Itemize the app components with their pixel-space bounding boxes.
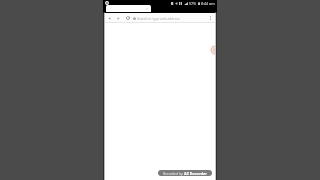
- button[interactable]: Search or type web address: [137, 13, 206, 23]
- button[interactable]: Back: [105, 13, 114, 23]
- staticText: AZ Recorder: [184, 171, 207, 176]
- staticText: 57%: [189, 1, 197, 5]
- button[interactable]: Reload: [123, 13, 132, 23]
- staticText: 8:44 pm: [201, 1, 215, 5]
- button[interactable]: Tab: [106, 5, 151, 12]
- staticText: Search or type web address: [137, 16, 180, 20]
- button[interactable]: Stop recording: [209, 44, 217, 56]
- staticText: Recorded by: [163, 171, 184, 176]
- button[interactable]: Forward: [114, 13, 123, 23]
- button[interactable]: More options: [206, 13, 215, 23]
